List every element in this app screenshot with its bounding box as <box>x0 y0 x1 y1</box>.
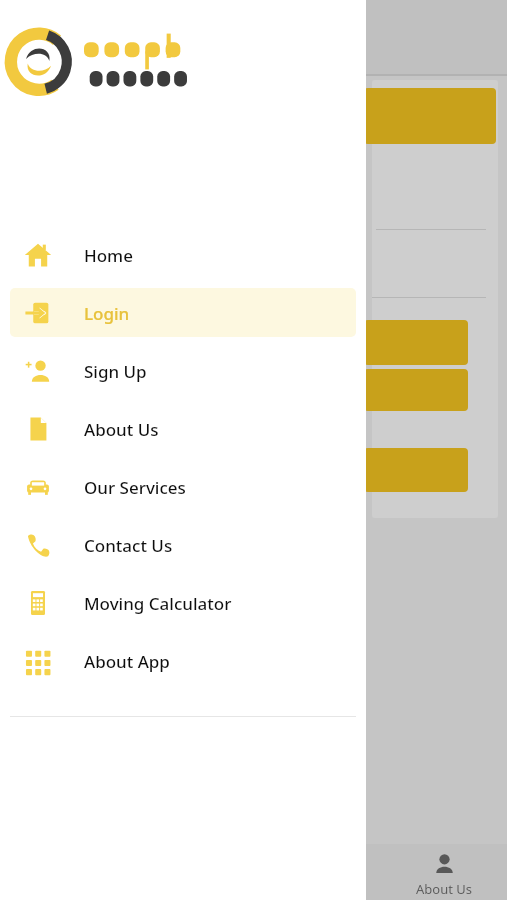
button[interactable]: About Us <box>394 844 494 900</box>
staticText: About Us <box>84 418 159 441</box>
staticText: About Us <box>416 880 473 898</box>
button[interactable]: Moving Calculator <box>10 578 356 627</box>
staticText: Sign Up <box>84 360 147 383</box>
button[interactable]: Our Services <box>10 462 356 511</box>
staticText: About App <box>84 650 170 673</box>
staticText: Moving Calculator <box>84 592 232 615</box>
button[interactable] <box>364 88 496 144</box>
staticText: Login <box>84 302 130 325</box>
button[interactable] <box>364 369 468 411</box>
button[interactable]: Sign Up <box>10 346 356 395</box>
staticText: Home <box>84 244 133 267</box>
staticText: Contact Us <box>84 534 173 557</box>
button[interactable]: Contact Us <box>10 520 356 569</box>
button[interactable]: About Us <box>10 404 356 453</box>
button[interactable]: About App <box>10 636 356 685</box>
staticText: Our Services <box>84 476 186 499</box>
button[interactable]: Home <box>10 230 356 279</box>
button[interactable] <box>364 320 468 365</box>
button[interactable] <box>364 448 468 492</box>
button[interactable]: Login <box>10 288 356 337</box>
